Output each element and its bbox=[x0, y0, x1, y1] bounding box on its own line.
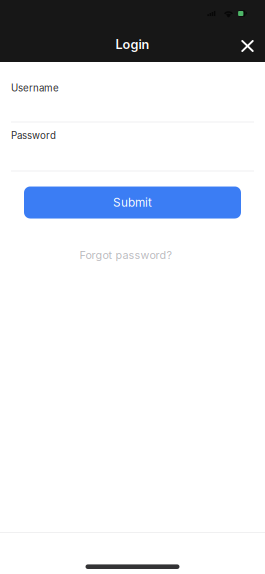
button[interactable]: Submit bbox=[24, 186, 241, 218]
button[interactable]: Close bbox=[232, 29, 262, 59]
staticText: Submit bbox=[113, 195, 152, 210]
button[interactable]: Forgot password? bbox=[0, 248, 252, 261]
staticText: Username bbox=[11, 82, 59, 94]
staticText: Password bbox=[11, 129, 56, 141]
staticText: Forgot password? bbox=[79, 248, 172, 262]
staticText: Login bbox=[115, 37, 149, 52]
